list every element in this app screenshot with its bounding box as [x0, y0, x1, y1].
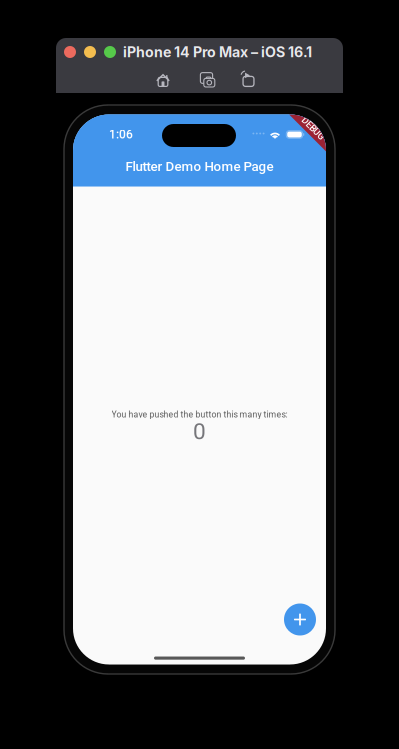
button[interactable]: Screenshot [192, 67, 220, 89]
button[interactable]: Home [149, 67, 177, 89]
staticText: Flutter Demo Home Page [125, 159, 273, 174]
button[interactable]: Zoom window [104, 46, 116, 58]
button[interactable]: Increment [284, 603, 316, 635]
staticText: You have pushed the button this many tim… [111, 409, 287, 420]
staticText: DEBUG [299, 123, 327, 134]
button[interactable]: Close window [64, 46, 76, 58]
staticText: iPhone 14 Pro Max – iOS 16.1 [123, 43, 312, 60]
button[interactable]: Minimise window [84, 46, 96, 58]
staticText: 0 [193, 418, 206, 445]
button[interactable]: Rotate [232, 67, 260, 89]
staticText: 1:06 [109, 127, 133, 142]
